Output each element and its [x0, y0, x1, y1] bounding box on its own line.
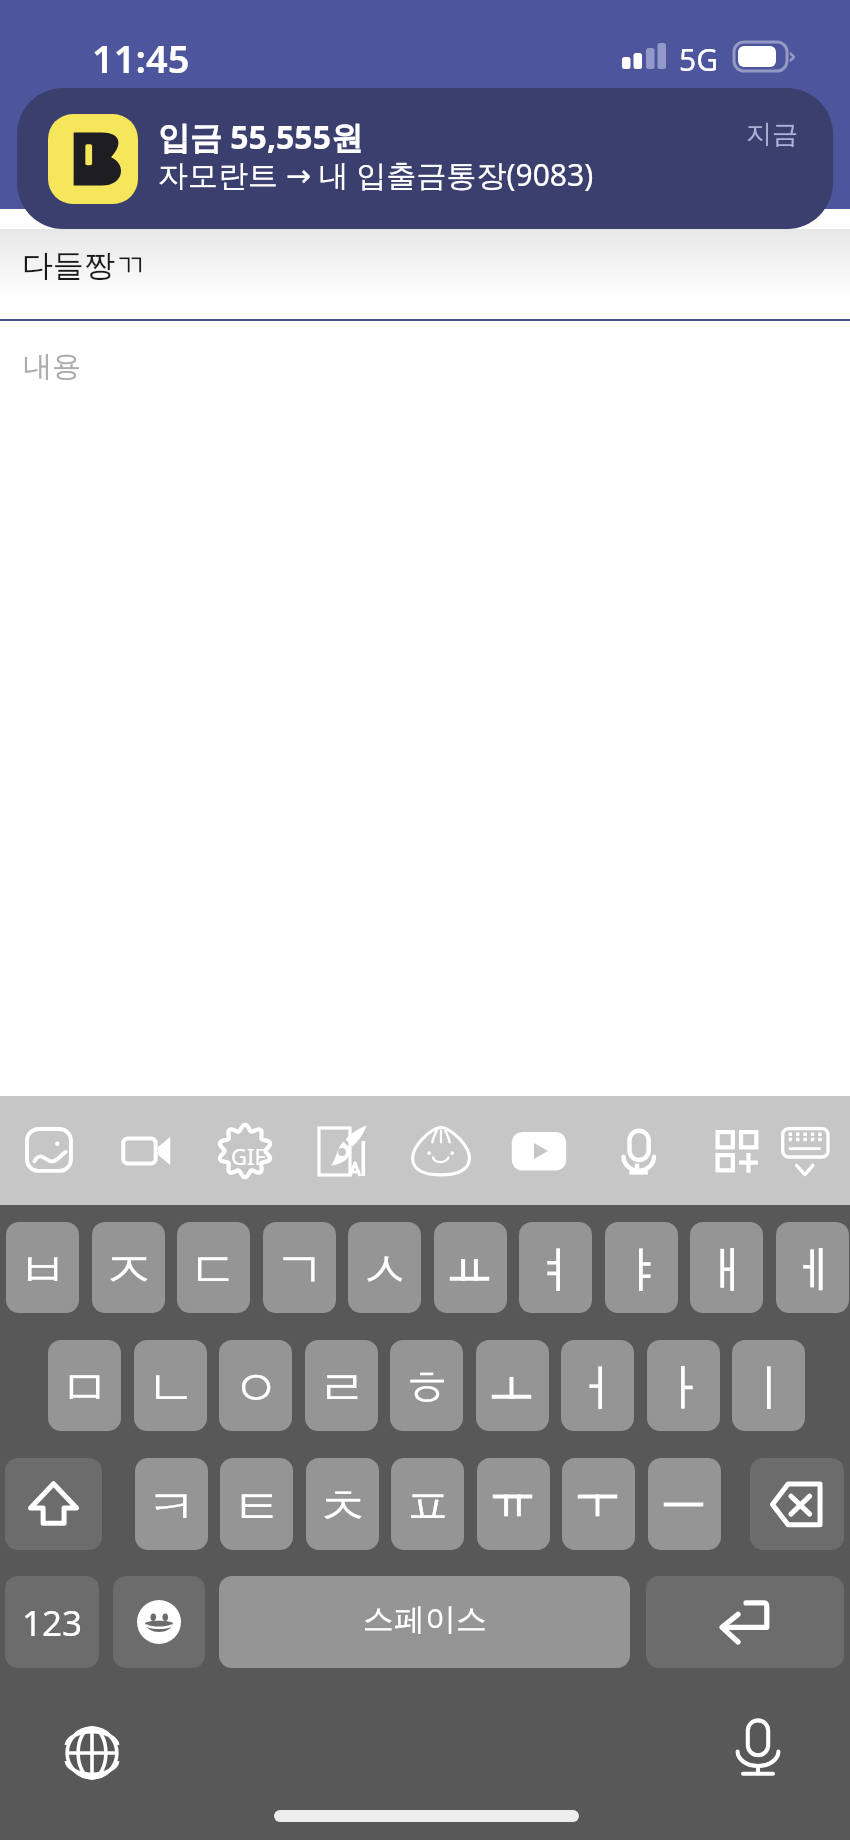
- button[interactable]: 123: [5, 1576, 99, 1668]
- button[interactable]: YouTube: [510, 1122, 568, 1180]
- staticText: ㅇ: [231, 1357, 281, 1420]
- button[interactable]: GIF: [217, 1123, 273, 1179]
- staticText: 자모란트 → 내 입출금통장(9083): [158, 154, 594, 195]
- staticText: 다들짱ㄲ: [22, 246, 146, 285]
- button[interactable]: ㄱ: [263, 1222, 336, 1313]
- staticText: ㅁ: [60, 1357, 110, 1420]
- staticText: ㅂ: [18, 1239, 68, 1302]
- staticText: ㅍ: [403, 1476, 453, 1539]
- staticText: 지금: [746, 118, 798, 151]
- staticText: ㅔ: [788, 1239, 838, 1302]
- button[interactable]: ㅋ: [135, 1458, 208, 1550]
- button[interactable]: 스페이스: [219, 1576, 630, 1668]
- button[interactable]: ㅣ: [732, 1340, 805, 1431]
- button[interactable]: Hide keyboard: [778, 1125, 832, 1179]
- button[interactable]: ㅎ: [390, 1340, 463, 1431]
- button[interactable]: Video: [120, 1124, 174, 1178]
- staticText: ㅎ: [402, 1357, 452, 1420]
- button[interactable]: ㄴ: [134, 1340, 207, 1431]
- staticText: ㄷ: [189, 1239, 239, 1302]
- button[interactable]: ㅡ: [648, 1458, 721, 1550]
- button[interactable]: ㅌ: [220, 1458, 293, 1550]
- button[interactable]: ㅊ: [306, 1458, 379, 1550]
- staticText: ㅋ: [147, 1476, 197, 1539]
- button[interactable]: ㅐ: [690, 1222, 763, 1313]
- staticText: 123: [22, 1599, 83, 1647]
- button[interactable]: ㅂ: [6, 1222, 79, 1313]
- button[interactable]: Apps: [709, 1124, 763, 1178]
- staticText: ㅈ: [104, 1239, 154, 1302]
- button[interactable]: Enter: [646, 1576, 844, 1668]
- staticText: 입금 55,555원: [158, 115, 363, 159]
- staticText: ㅓ: [573, 1357, 623, 1420]
- staticText: ㄱ: [275, 1239, 325, 1302]
- button[interactable]: ㅍ: [391, 1458, 464, 1550]
- staticText: ㄴ: [146, 1357, 196, 1420]
- button[interactable]: Shift: [5, 1458, 102, 1550]
- button[interactable]: ㅜ: [562, 1458, 635, 1550]
- staticText: ㅊ: [318, 1476, 368, 1539]
- staticText: ㅏ: [659, 1357, 709, 1420]
- button[interactable]: ㅇ: [219, 1340, 292, 1431]
- button[interactable]: ㄷ: [177, 1222, 250, 1313]
- button[interactable]: Backspace: [750, 1458, 844, 1550]
- staticText: ㅐ: [702, 1239, 752, 1302]
- button[interactable]: ㅏ: [647, 1340, 720, 1431]
- button[interactable]: ㅠ: [477, 1458, 550, 1550]
- button[interactable]: ㅔ: [776, 1222, 849, 1313]
- button[interactable]: ㅈ: [92, 1222, 165, 1313]
- staticText: 내용: [23, 348, 81, 385]
- button[interactable]: Voice: [610, 1124, 664, 1178]
- button[interactable]: ㅑ: [605, 1222, 678, 1313]
- button[interactable]: Emoji: [113, 1576, 205, 1668]
- button[interactable]: ㅕ: [519, 1222, 592, 1313]
- button[interactable]: ㅅ: [348, 1222, 421, 1313]
- button[interactable]: ㅛ: [434, 1222, 507, 1313]
- button[interactable]: Photos: [24, 1125, 76, 1177]
- button[interactable]: Voice input: [728, 1718, 788, 1778]
- staticText: ㅑ: [617, 1239, 667, 1302]
- button[interactable]: Sticker: [412, 1122, 470, 1180]
- button[interactable]: ㄹ: [305, 1340, 378, 1431]
- button[interactable]: ㅓ: [561, 1340, 634, 1431]
- staticText: 5G: [679, 39, 718, 80]
- staticText: 11:45: [92, 32, 190, 84]
- staticText: ㅅ: [360, 1239, 410, 1302]
- button[interactable]: ㅗ: [476, 1340, 549, 1431]
- staticText: ㄹ: [317, 1357, 367, 1420]
- button[interactable]: Change language: [63, 1724, 121, 1782]
- staticText: 스페이스: [363, 1600, 487, 1639]
- button[interactable]: ㅁ: [48, 1340, 121, 1431]
- button[interactable]: AI drawing: [315, 1123, 371, 1179]
- staticText: ㅌ: [232, 1476, 282, 1539]
- staticText: GIF: [231, 1141, 266, 1171]
- button[interactable]: 입금 55,555원: [17, 88, 833, 229]
- staticText: ㅕ: [531, 1239, 581, 1302]
- staticText: ㅣ: [744, 1357, 794, 1420]
